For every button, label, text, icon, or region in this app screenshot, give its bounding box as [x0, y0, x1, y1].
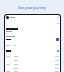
button[interactable]: Profile [6, 16, 9, 19]
staticText: See your journey [0, 5, 64, 10]
